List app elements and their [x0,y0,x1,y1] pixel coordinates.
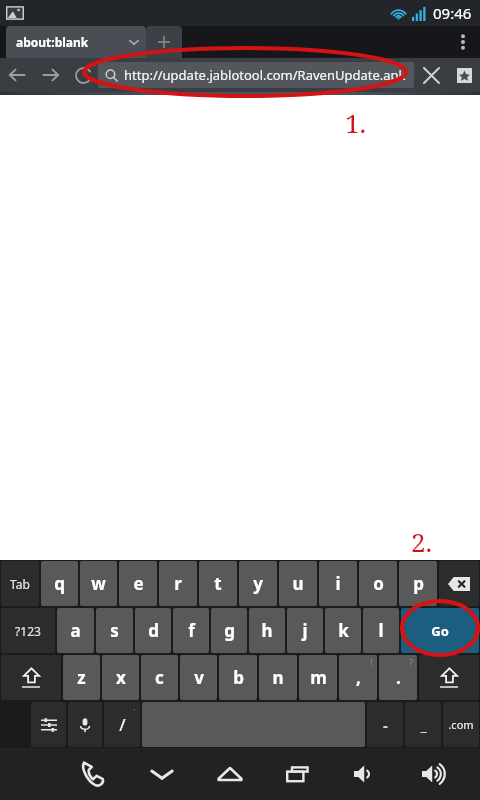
button[interactable]: c [141,655,178,700]
button[interactable]: Stop [414,58,448,92]
button[interactable]: s [96,608,133,653]
staticText: x [116,666,126,689]
button[interactable]: z [63,655,100,700]
staticText: / [119,713,126,736]
staticText: m [310,666,327,689]
staticText: ?123 [15,623,41,639]
button[interactable]: w [80,561,117,606]
staticText: ? [409,656,413,668]
staticText: about:blank [16,34,89,50]
staticText: a [70,619,81,642]
staticText: o [373,572,384,595]
button[interactable]: r [159,561,197,606]
staticText: 09:46 [433,3,472,23]
button[interactable]: b [219,655,257,700]
button[interactable]: Volume down [332,748,400,800]
button[interactable] [68,702,102,747]
button[interactable]: . [379,655,417,700]
staticText: . [396,666,401,689]
button[interactable]: More options [446,26,480,58]
staticText: c [155,666,164,689]
button[interactable]: - [367,702,403,747]
button[interactable]: m [299,655,337,700]
button[interactable]: Hide keyboard [127,748,196,800]
button[interactable] [31,702,66,747]
button[interactable]: d [135,608,171,653]
staticText: l [378,619,384,642]
button[interactable]: j [287,608,323,653]
button[interactable]: Bookmark [448,58,480,92]
button[interactable]: New tab [146,26,182,58]
button[interactable]: f [173,608,209,653]
button[interactable]: Go [401,608,479,653]
button[interactable]: Call [58,748,127,800]
staticText: e [133,572,144,595]
button[interactable]: ?123 [1,608,55,653]
staticText: y [253,572,263,595]
button[interactable]: i [319,561,357,606]
staticText: p [413,572,424,595]
staticText: Go [431,622,449,640]
staticText: r [174,572,182,595]
staticText: q [54,572,65,595]
staticText: i [335,572,341,595]
button[interactable]: t [199,561,237,606]
staticText: f [188,619,195,642]
button[interactable]: x [102,655,139,700]
staticText: t [214,572,222,595]
button[interactable]: Tab [1,561,39,606]
button[interactable]: u [279,561,317,606]
button[interactable]: Refresh [68,58,98,92]
button[interactable]: Recent apps [264,748,332,800]
button[interactable]: , [339,655,377,700]
staticText: _ [420,715,427,735]
button[interactable] [439,561,479,606]
staticText: 1. [345,105,367,140]
button[interactable]: g [211,608,247,653]
staticText: · [133,703,136,715]
button[interactable]: Forward [34,58,68,92]
staticText: z [77,666,86,689]
button[interactable]: .com [443,702,479,747]
button[interactable]: about:blank [6,26,146,58]
button[interactable]: o [359,561,397,606]
staticText: 2. [411,524,433,559]
button[interactable]: l [363,608,399,653]
staticText: ! [370,656,373,668]
staticText: v [194,666,204,689]
button[interactable]: Volume up [400,748,468,800]
button[interactable]: e [119,561,157,606]
button[interactable]: _ [405,702,441,747]
button[interactable] [419,655,479,700]
button[interactable]: Back [0,58,34,92]
button[interactable]: y [239,561,277,606]
staticText: u [292,572,304,595]
button[interactable] [1,655,61,700]
staticText: , [356,666,361,689]
staticText: k [338,619,349,642]
button[interactable]: n [259,655,297,700]
button[interactable]: http://update.jablotool.com/RavenUpdate.… [98,62,414,88]
button[interactable]: k [325,608,361,653]
staticText: .com [448,717,474,732]
button[interactable]: p [399,561,437,606]
staticText: s [110,619,119,642]
button[interactable]: Home [196,748,264,800]
button[interactable]: h [249,608,285,653]
button[interactable]: q [41,561,78,606]
staticText: Tab [10,576,30,592]
staticText: w [91,572,106,595]
button[interactable]: a [57,608,94,653]
staticText: d [148,619,159,642]
staticText: http://update.jablotool.com/RavenUpdate.… [124,66,406,84]
button[interactable]: v [180,655,217,700]
button[interactable]: / [104,702,140,747]
staticText: h [261,619,273,642]
staticText: b [233,666,244,689]
staticText: g [224,619,235,642]
staticText: - [383,715,388,735]
staticText: n [272,666,284,689]
staticText: j [302,619,308,642]
